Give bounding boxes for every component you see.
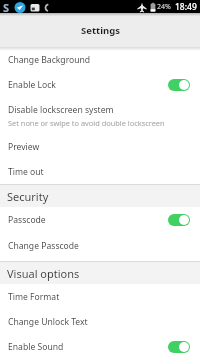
staticText: Time Format xyxy=(8,291,200,303)
button[interactable]: Passcode xyxy=(0,207,200,232)
staticText: Enable Lock xyxy=(8,79,168,91)
staticText: S xyxy=(3,0,10,13)
button[interactable]: Time out xyxy=(0,159,200,184)
staticText: Preview xyxy=(8,141,200,153)
staticText: Set none or swipe to avoid double locksc… xyxy=(8,118,165,128)
staticText: Change Background xyxy=(8,54,200,66)
button[interactable]: Change Background xyxy=(0,47,200,72)
staticText: Change Passcode xyxy=(8,240,200,252)
button[interactable]: Change Unlock Text xyxy=(0,309,200,334)
button[interactable]: Change Passcode xyxy=(0,232,200,259)
staticText: 18:49 xyxy=(175,1,197,13)
staticText: Passcode xyxy=(8,214,168,226)
button[interactable]: Enable Lock xyxy=(0,72,200,98)
button[interactable]: Enable Sound xyxy=(0,334,200,355)
button[interactable]: Disable lockscreen system xyxy=(0,98,200,135)
staticText: Enable Sound xyxy=(8,341,168,353)
staticText: 24% xyxy=(157,2,171,12)
staticText: Security xyxy=(7,189,49,204)
button[interactable]: Time Format xyxy=(0,284,200,309)
staticText: Time out xyxy=(8,166,200,178)
staticText: Disable lockscreen system xyxy=(8,104,114,116)
button[interactable]: Preview xyxy=(0,135,200,159)
staticText: Visual options xyxy=(7,266,80,281)
staticText: Settings xyxy=(81,24,120,37)
staticText: Change Unlock Text xyxy=(8,316,200,328)
